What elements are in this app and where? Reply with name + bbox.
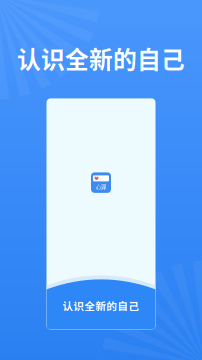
- staticText: 认识全新的自己: [17, 41, 185, 75]
- staticText: 心理: [96, 183, 106, 191]
- staticText: 认识全新的自己: [62, 298, 139, 313]
